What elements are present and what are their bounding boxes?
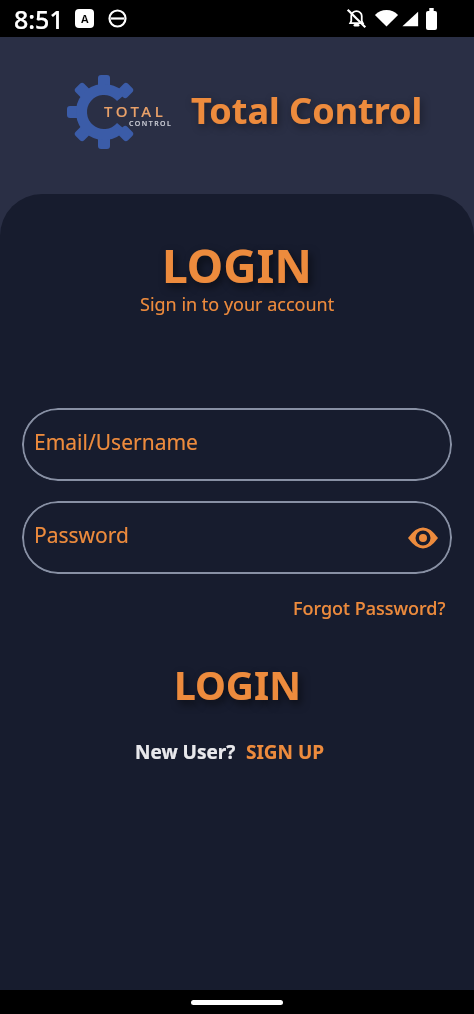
staticText: TOTAL (104, 101, 167, 121)
staticText: New User? (135, 739, 236, 765)
staticText: A (81, 11, 89, 26)
staticText: Email/Username (34, 428, 198, 457)
staticText: Total Control (191, 86, 423, 135)
staticText: 8:51 (14, 2, 64, 36)
button[interactable]: SIGN UP (246, 739, 325, 765)
button[interactable]: Forgot Password? (293, 596, 446, 621)
button[interactable]: Password (22, 501, 452, 574)
staticText: Sign in to your account (140, 292, 335, 317)
staticText: Password (34, 521, 129, 550)
staticText: LOGIN (162, 234, 312, 297)
staticText: CONTROL (129, 119, 173, 129)
button[interactable] (191, 1000, 283, 1005)
button[interactable]: Email/Username (22, 408, 452, 481)
button[interactable]: LOGIN (174, 658, 301, 711)
staticText: LOGIN (174, 658, 301, 711)
